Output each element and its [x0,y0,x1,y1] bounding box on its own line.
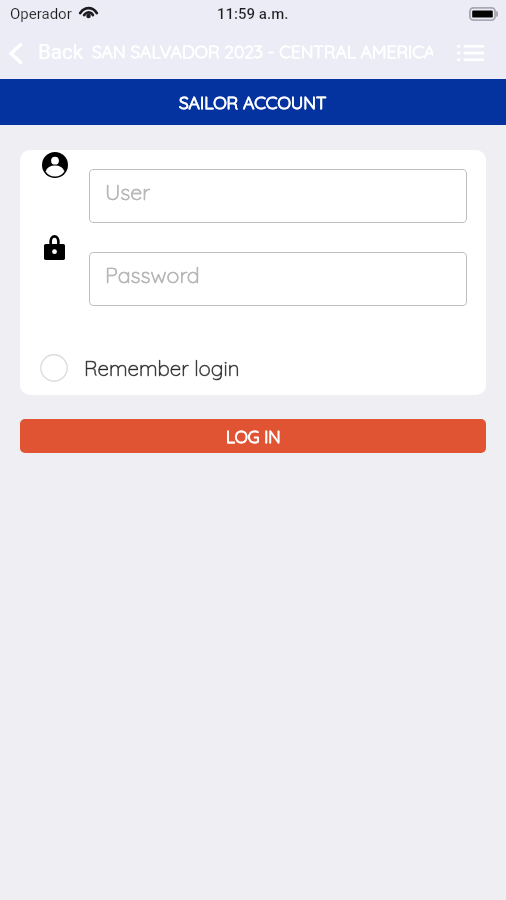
staticText: SAN SALVADOR 2023 - CENTRAL AMERICAN [92,40,433,62]
staticText: User [105,178,151,205]
staticText: Operador [10,5,72,23]
staticText: Password [105,261,200,288]
staticText: Password [105,261,200,288]
staticText: Remember login [84,355,240,381]
staticText: Back [38,40,84,64]
button[interactable]: Menu [443,33,506,73]
staticText: SAN SALVADOR 2023 - CENTRAL AMERICAN [92,40,433,62]
button[interactable]: LOG IN [20,419,486,453]
staticText: LOG IN [226,426,281,447]
staticText: User [105,178,151,205]
button[interactable]: Back [0,35,90,71]
button[interactable]: User [89,169,467,223]
staticText: Remember login [84,355,240,381]
staticText: 11:59 a.m. [217,5,289,23]
button[interactable]: Password [89,252,467,306]
button[interactable]: Remember login [20,348,264,388]
staticText: LOG IN [226,426,281,447]
staticText: SAILOR ACCOUNT [179,91,327,113]
staticText: SAILOR ACCOUNT [179,91,327,113]
